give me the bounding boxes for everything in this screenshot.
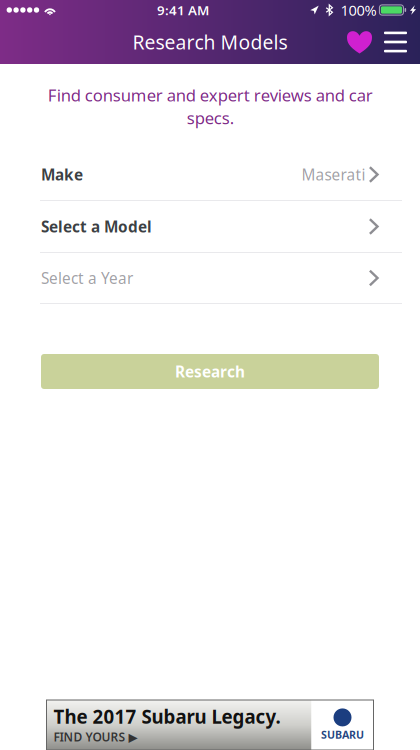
button[interactable]: Menu <box>378 20 420 64</box>
staticText: Maserati <box>301 164 365 185</box>
staticText: Research <box>175 361 245 382</box>
staticText: 100% <box>340 0 376 20</box>
button[interactable]: Research <box>41 354 379 389</box>
staticText: Find consumer and expert reviews and car… <box>47 84 372 129</box>
button[interactable]: Advertisement: The 2017 Subaru Legacy <box>46 700 373 750</box>
button[interactable]: Favorites <box>341 20 378 64</box>
staticText: Make <box>41 164 83 185</box>
staticText: 9:41 AM <box>157 1 209 19</box>
staticText: FIND YOURS ▶ <box>53 729 137 745</box>
button[interactable]: Select a Year <box>0 253 420 304</box>
staticText: Select a Year <box>41 268 133 288</box>
staticText: Research Models <box>132 29 287 55</box>
staticText: The 2017 Subaru Legacy. <box>53 704 280 729</box>
button[interactable]: Make <box>0 149 420 201</box>
staticText: Select a Model <box>41 216 152 237</box>
staticText: SUBARU <box>321 727 364 742</box>
button[interactable]: Select a Model <box>0 201 420 253</box>
